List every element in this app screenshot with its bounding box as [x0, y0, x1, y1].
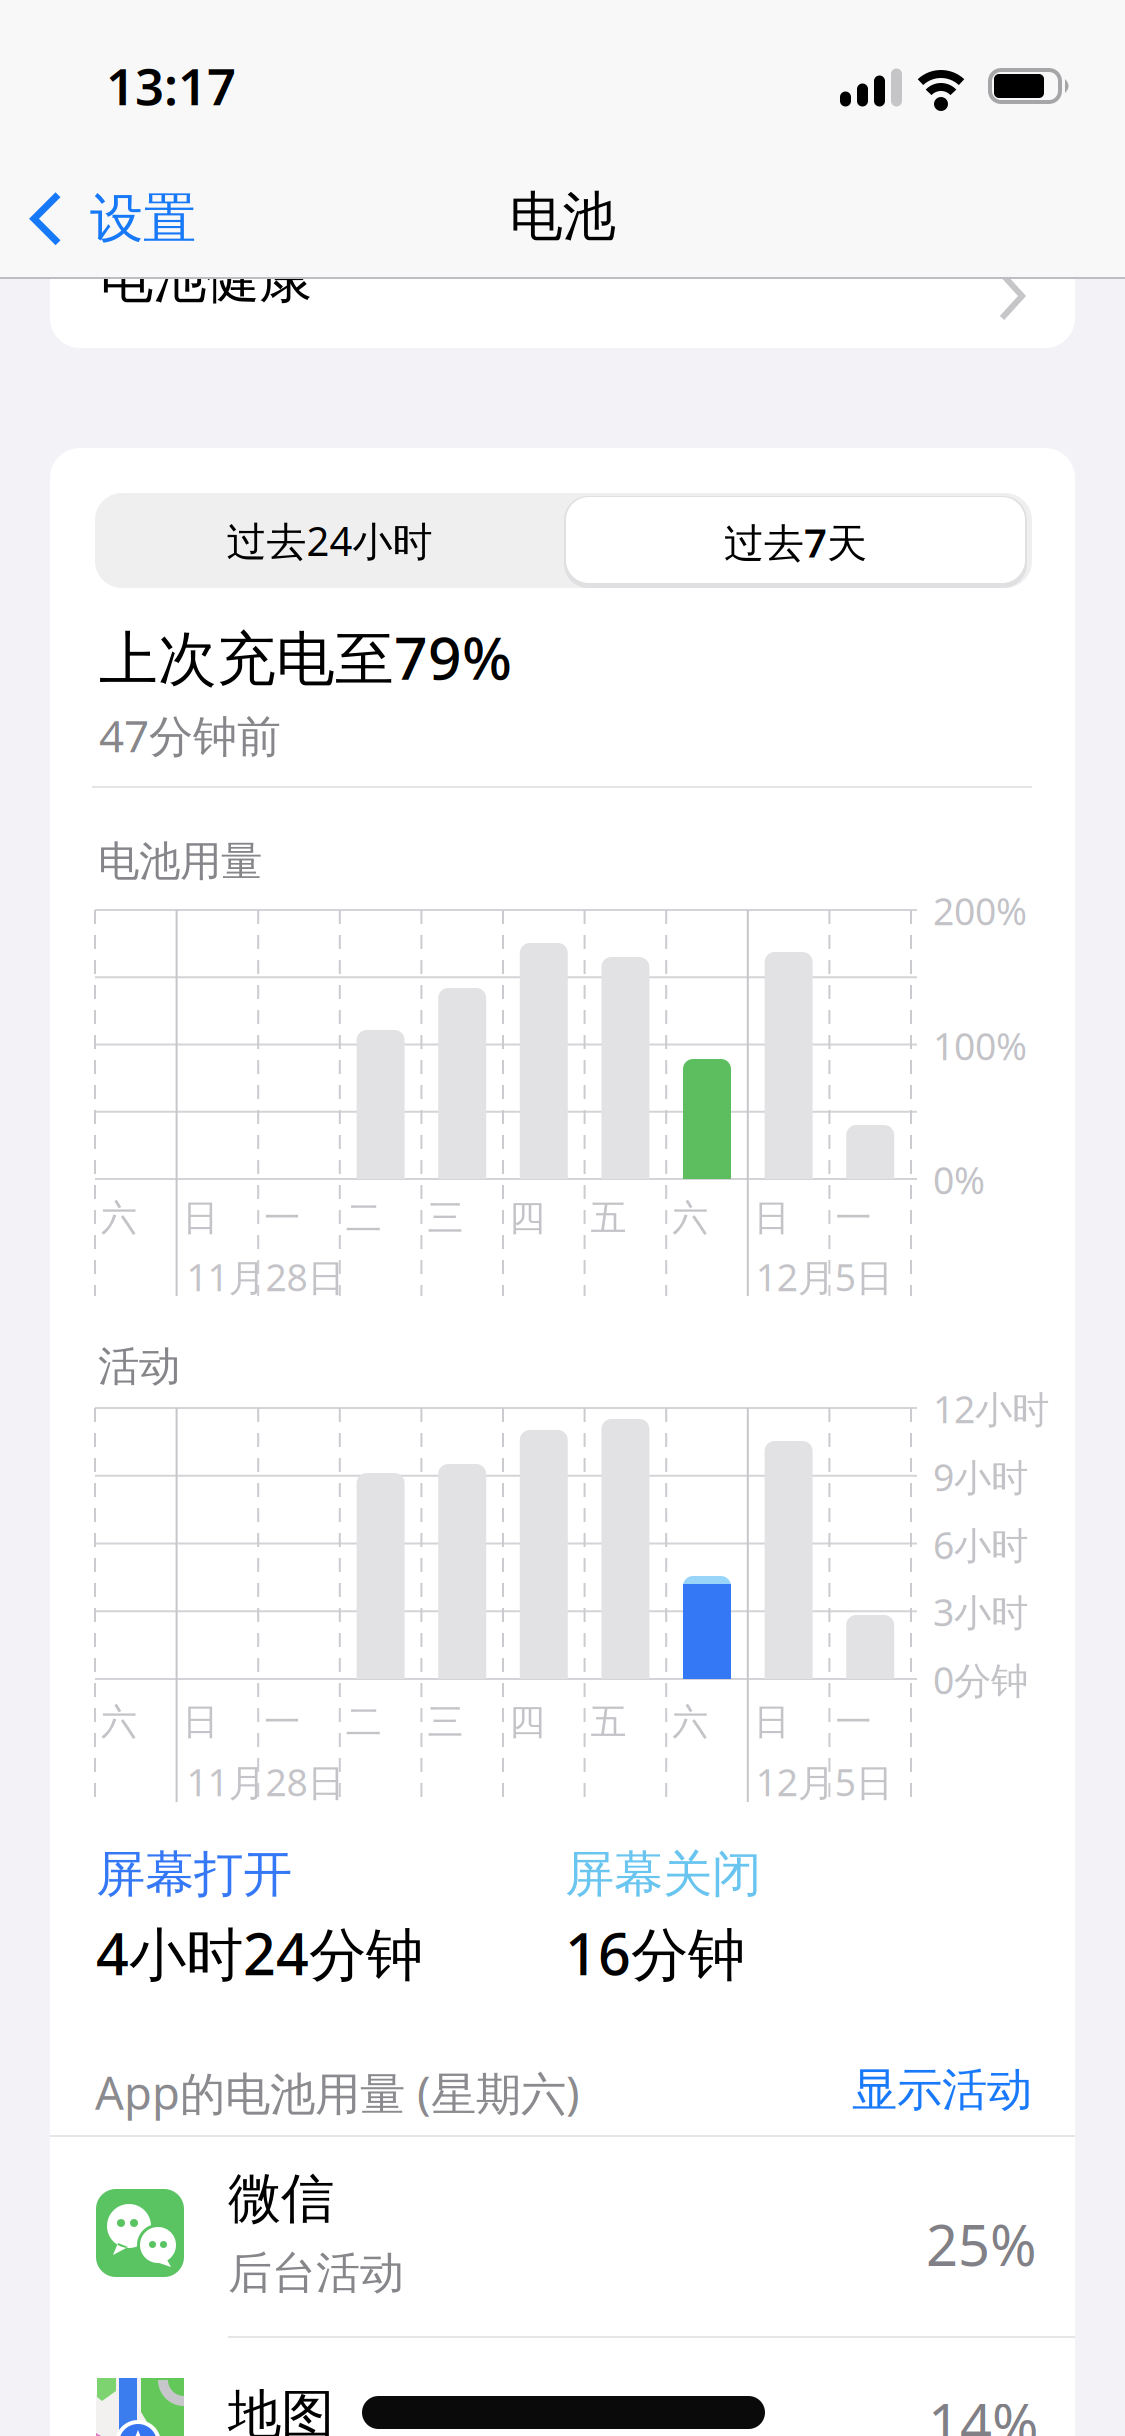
- staticText: 二: [346, 1196, 382, 1240]
- staticText: 4小时24分钟: [96, 1915, 423, 1991]
- staticText: 3小时: [933, 1587, 1028, 1637]
- staticText: 五: [591, 1700, 627, 1744]
- button[interactable]: 显示活动: [792, 2062, 1032, 2118]
- button[interactable]: 过去24小时: [95, 493, 564, 588]
- staticText: 显示活动: [852, 2062, 1032, 2118]
- staticText: 设置: [90, 186, 196, 251]
- staticText: 12月5日: [756, 1252, 893, 1302]
- staticText: 一: [264, 1700, 300, 1744]
- staticText: 6小时: [933, 1520, 1028, 1570]
- staticText: 三: [427, 1700, 463, 1744]
- staticText: 25%: [926, 2207, 1037, 2281]
- staticText: 11月28日: [187, 1252, 345, 1302]
- staticText: 9小时: [933, 1452, 1028, 1502]
- staticText: 13:17: [106, 52, 236, 119]
- staticText: 五: [591, 1196, 627, 1240]
- staticText: 六: [101, 1700, 137, 1744]
- button[interactable]: 过去7天: [564, 496, 1027, 588]
- staticText: 电池用量: [98, 836, 262, 887]
- staticText: 地图: [228, 2382, 334, 2436]
- staticText: 12月5日: [756, 1757, 893, 1807]
- staticText: 一: [835, 1196, 871, 1240]
- staticText: 一: [264, 1196, 300, 1240]
- button[interactable]: 电池健康: [50, 178, 1075, 348]
- staticText: 电池: [509, 184, 615, 249]
- staticText: 过去24小时: [226, 514, 432, 567]
- staticText: 六: [101, 1196, 137, 1240]
- staticText: 12小时: [933, 1384, 1049, 1434]
- staticText: 微信: [228, 2166, 334, 2231]
- staticText: 日: [754, 1700, 790, 1744]
- staticText: 日: [183, 1196, 219, 1240]
- staticText: 0%: [933, 1155, 985, 1205]
- staticText: 100%: [933, 1021, 1027, 1071]
- staticText: 一: [835, 1700, 871, 1744]
- staticText: 后台活动: [228, 2246, 404, 2300]
- staticText: 三: [427, 1196, 463, 1240]
- staticText: 47分钟前: [99, 706, 281, 764]
- staticText: 电池健康: [100, 246, 312, 311]
- staticText: 上次充电至79%: [99, 618, 512, 696]
- staticText: 200%: [933, 886, 1027, 936]
- staticText: 二: [346, 1700, 382, 1744]
- staticText: App的电池用量 (星期六): [95, 2062, 580, 2122]
- staticText: 六: [672, 1196, 708, 1240]
- staticText: 0分钟: [933, 1655, 1028, 1705]
- staticText: 屏幕打开: [96, 1844, 292, 1905]
- button[interactable]: 微信: [50, 2137, 1075, 2338]
- staticText: 活动: [98, 1341, 180, 1392]
- staticText: 屏幕关闭: [565, 1844, 761, 1905]
- button[interactable]: 地图: [50, 2338, 1075, 2436]
- staticText: 14%: [928, 2386, 1039, 2436]
- staticText: 16分钟: [565, 1915, 745, 1991]
- staticText: 日: [754, 1196, 790, 1240]
- staticText: 11月28日: [187, 1757, 345, 1807]
- button[interactable]: 设置: [28, 186, 196, 251]
- staticText: 六: [672, 1700, 708, 1744]
- staticText: 四: [509, 1700, 545, 1744]
- staticText: 过去7天: [724, 515, 867, 568]
- staticText: 四: [509, 1196, 545, 1240]
- staticText: 日: [183, 1700, 219, 1744]
